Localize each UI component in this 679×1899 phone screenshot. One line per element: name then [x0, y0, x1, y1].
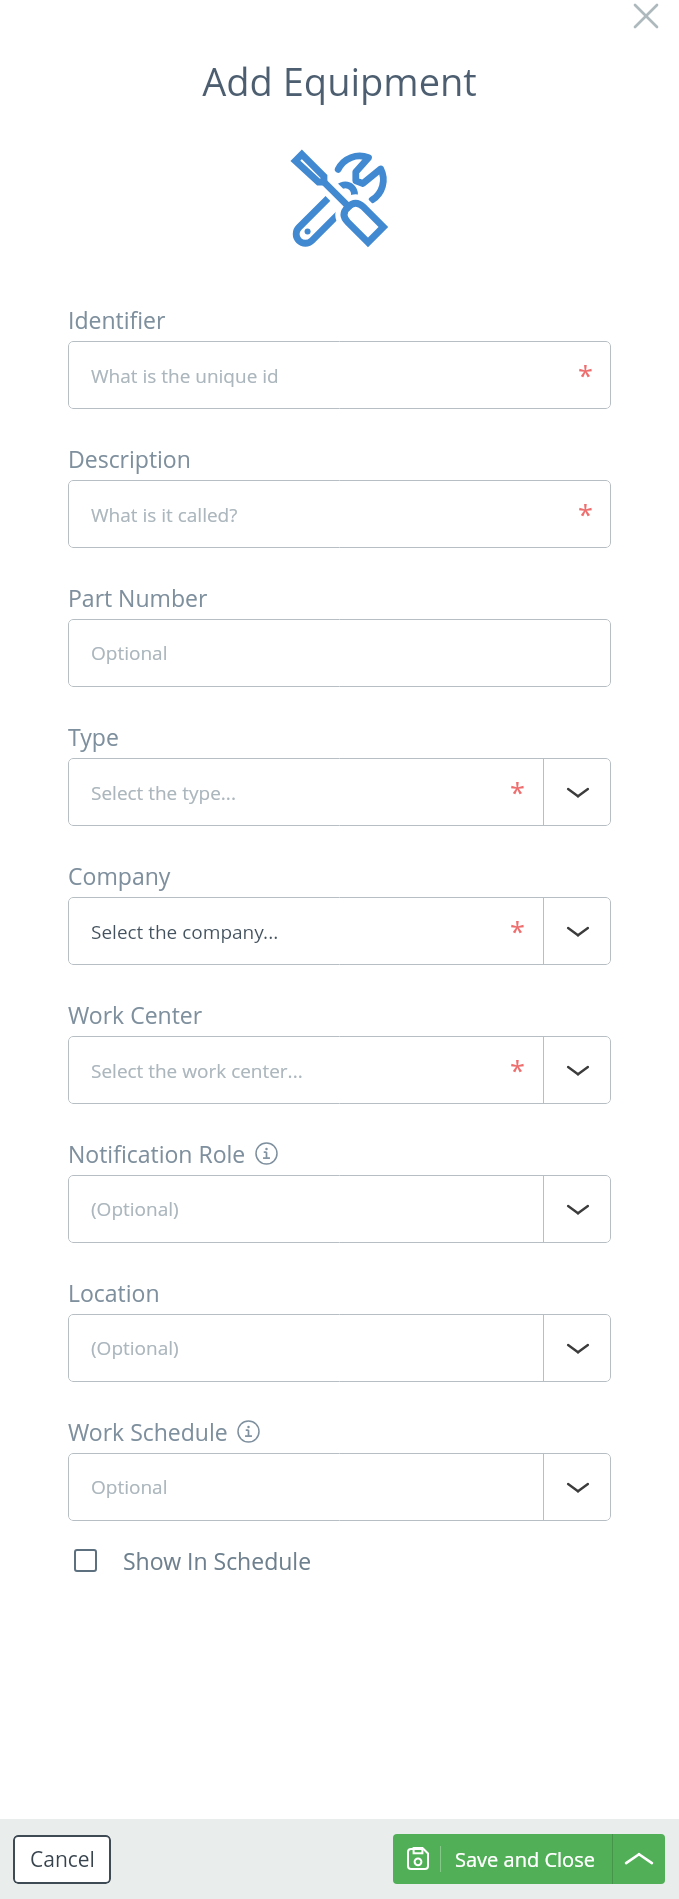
staticText: Save and Close	[455, 1846, 595, 1873]
staticText: Part Number	[68, 582, 208, 613]
staticText: Work Schedule	[68, 1416, 228, 1447]
button[interactable]: More save options	[613, 1834, 665, 1884]
button[interactable]: Select the work center...	[68, 1036, 611, 1104]
button[interactable]: Save and Close	[393, 1834, 612, 1884]
staticText: Optional	[91, 640, 168, 666]
staticText: Show In Schedule	[123, 1545, 312, 1576]
button[interactable]: What is the unique id	[68, 341, 611, 409]
staticText: *	[510, 774, 525, 811]
button[interactable]: Show In Schedule	[68, 1543, 312, 1578]
staticText: Location	[68, 1277, 160, 1308]
staticText: Select the company...	[91, 919, 279, 945]
staticText: *	[578, 496, 593, 533]
button[interactable]: Optional	[68, 1453, 611, 1521]
staticText: (Optional)	[91, 1196, 179, 1222]
staticText: Type	[68, 721, 119, 752]
button[interactable]: Close	[634, 4, 658, 28]
staticText: Description	[68, 443, 191, 474]
staticText: Company	[68, 860, 171, 891]
staticText: Select the type...	[91, 780, 236, 806]
staticText: Notification Role	[68, 1138, 246, 1169]
staticText: *	[510, 913, 525, 950]
staticText: *	[578, 357, 593, 394]
button[interactable]: Optional	[68, 619, 611, 687]
button[interactable]: Select the type...	[68, 758, 611, 826]
staticText: Select the work center...	[91, 1058, 303, 1084]
button[interactable]: What is it called?	[68, 480, 611, 548]
staticText: (Optional)	[91, 1335, 179, 1361]
button[interactable]: Select the company...	[68, 897, 611, 965]
button[interactable]: Cancel	[13, 1835, 111, 1884]
staticText: Add Equipment	[202, 55, 477, 107]
staticText: *	[510, 1052, 525, 1089]
staticText: Optional	[91, 1474, 168, 1500]
staticText: What is it called?	[91, 502, 238, 528]
button[interactable]: (Optional)	[68, 1314, 611, 1382]
staticText: Identifier	[68, 304, 166, 335]
button[interactable]: (Optional)	[68, 1175, 611, 1243]
staticText: Work Center	[68, 999, 203, 1030]
staticText: What is the unique id	[91, 363, 279, 389]
staticText: Cancel	[30, 1845, 95, 1874]
